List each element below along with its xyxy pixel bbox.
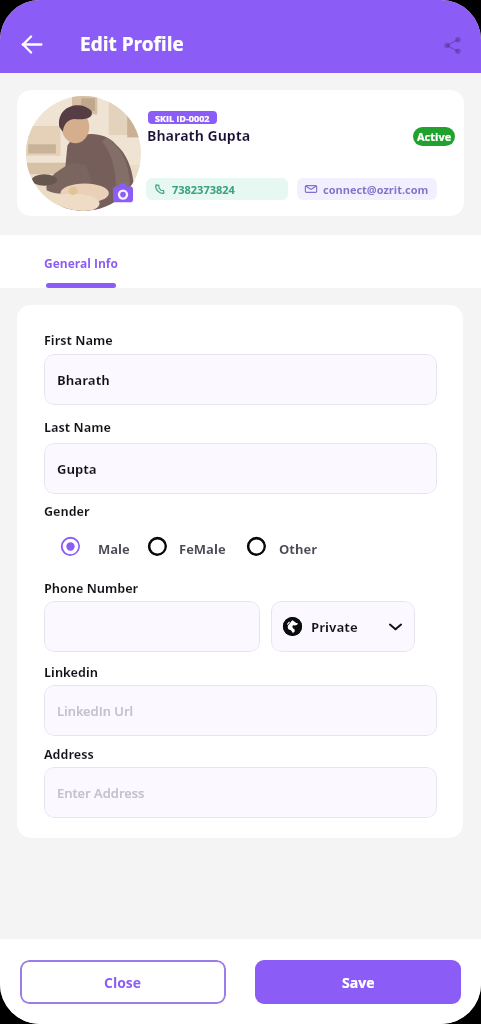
staticText: Address (44, 746, 94, 763)
button[interactable]: connect@ozrit.com (297, 178, 437, 200)
staticText: Bharath Gupta (147, 126, 251, 145)
button[interactable]: Option (246, 536, 266, 556)
staticText: Male (98, 540, 130, 558)
staticText: Enter Address (57, 784, 145, 802)
staticText: 7382373824 (172, 182, 235, 197)
staticText: Edit Profile (80, 31, 184, 57)
staticText: SKIL ID-0002 (155, 112, 210, 124)
button[interactable]: Save (255, 960, 461, 1004)
button[interactable]: Bharath (44, 354, 437, 405)
staticText: Bharath (57, 371, 110, 389)
button[interactable]: Enter Address (44, 767, 437, 818)
button[interactable]: Selected option (60, 536, 80, 556)
button[interactable]: Back (11, 24, 51, 64)
staticText: Private (311, 618, 358, 636)
button[interactable]: 7382373824 (146, 178, 288, 200)
staticText: Gupta (57, 460, 97, 478)
button[interactable] (44, 601, 260, 652)
staticText: Other (279, 540, 318, 558)
button[interactable]: General Info (35, 235, 127, 288)
button[interactable]: Private (271, 601, 415, 652)
staticText: Last Name (44, 419, 111, 436)
button[interactable]: Close (20, 960, 226, 1004)
staticText: Active (417, 129, 452, 144)
button[interactable]: Share (437, 30, 467, 60)
staticText: Close (104, 973, 142, 992)
button[interactable]: Change photo (109, 179, 137, 207)
button[interactable]: Active (413, 127, 455, 146)
staticText: Linkedin (44, 664, 98, 681)
button[interactable]: LinkedIn Url (44, 685, 437, 736)
staticText: FeMale (179, 540, 226, 558)
staticText: Gender (44, 503, 90, 520)
button[interactable]: Gupta (44, 443, 437, 494)
staticText: First Name (44, 332, 113, 349)
staticText: connect@ozrit.com (323, 182, 429, 197)
staticText: General Info (44, 255, 118, 271)
staticText: LinkedIn Url (57, 702, 134, 720)
staticText: Save (342, 973, 375, 992)
button[interactable]: Option (147, 536, 167, 556)
staticText: Phone Number (44, 580, 139, 597)
